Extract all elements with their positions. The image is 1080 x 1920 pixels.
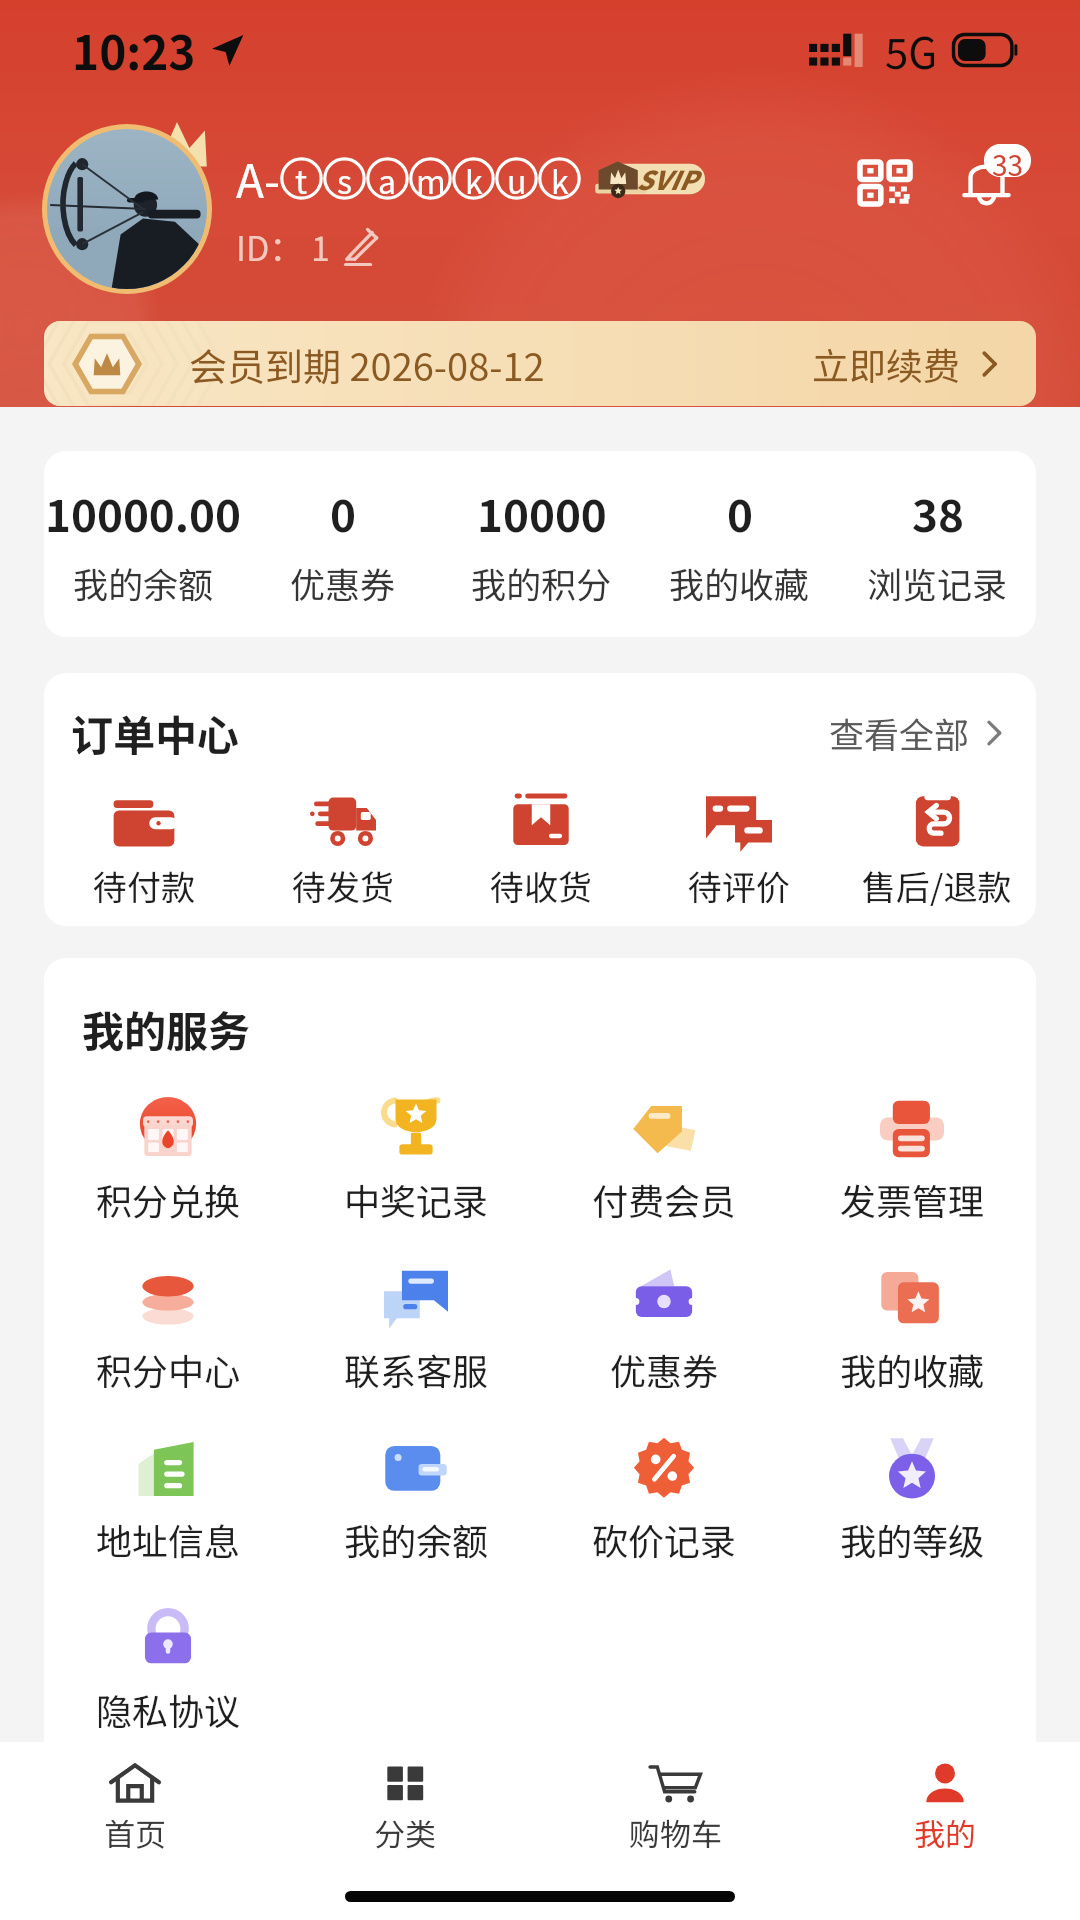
button[interactable]: 首页 xyxy=(0,1763,270,1855)
button[interactable]: 我的收藏 xyxy=(788,1267,1036,1395)
staticText: 查看全部 xyxy=(829,707,970,758)
button[interactable]: 售后/退款 xyxy=(838,787,1036,910)
staticText: 联系客服 xyxy=(344,1343,489,1395)
button[interactable]: 发票管理 xyxy=(788,1097,1036,1225)
staticText: A- xyxy=(236,145,280,212)
staticText: 订单中心 xyxy=(71,702,240,763)
staticText: 10000.00 xyxy=(45,481,242,545)
button[interactable]: 待收货 xyxy=(442,787,640,910)
staticText: ID： 1 xyxy=(236,222,330,271)
button[interactable]: 中奖记录 xyxy=(292,1097,540,1225)
staticText: m xyxy=(416,157,446,200)
staticText: 地址信息 xyxy=(96,1513,241,1565)
staticText: 隐私协议 xyxy=(96,1683,241,1735)
button[interactable]: Profile photo xyxy=(47,129,207,289)
staticText: 10:23 xyxy=(72,17,196,84)
staticText: 积分兑换 xyxy=(96,1173,241,1225)
staticText: 发票管理 xyxy=(840,1173,985,1225)
staticText: 5G xyxy=(885,20,938,81)
staticText: 砍价记录 xyxy=(592,1513,737,1565)
staticText: t xyxy=(295,157,308,200)
staticText: 10000 xyxy=(477,481,607,545)
staticText: SVIP xyxy=(636,160,697,198)
button[interactable]: Notifications xyxy=(963,137,1047,213)
staticText: k xyxy=(551,157,569,200)
staticText: a xyxy=(378,157,397,200)
button[interactable]: 待付款 xyxy=(44,787,243,910)
button[interactable]: 会员到期 2026-08-12 xyxy=(44,321,1036,406)
button[interactable]: 地址信息 xyxy=(44,1437,292,1565)
staticText: 我的余额 xyxy=(73,557,214,608)
staticText: 中奖记录 xyxy=(344,1173,489,1225)
staticText: 付费会员 xyxy=(592,1173,737,1225)
staticText: u xyxy=(507,157,527,200)
button[interactable]: 付费会员 xyxy=(540,1097,788,1225)
button[interactable]: 我的 xyxy=(810,1763,1080,1855)
staticText: 售后/退款 xyxy=(862,861,1012,910)
staticText: 38 xyxy=(912,481,964,545)
button[interactable]: 查看全部 xyxy=(829,707,1010,758)
staticText: 优惠券 xyxy=(290,557,396,608)
button[interactable]: 优惠券 xyxy=(540,1267,788,1395)
button[interactable]: 待评价 xyxy=(640,787,838,910)
staticText: 会员到期 2026-08-12 xyxy=(189,337,545,392)
button[interactable]: 待发货 xyxy=(243,787,442,910)
staticText: 我的收藏 xyxy=(840,1343,985,1395)
other: Edit nickname xyxy=(344,228,382,266)
staticText: 分类 xyxy=(374,1810,436,1855)
button[interactable]: 联系客服 xyxy=(292,1267,540,1395)
button[interactable]: 砍价记录 xyxy=(540,1437,788,1565)
staticText: 优惠券 xyxy=(610,1343,719,1395)
staticText: k xyxy=(465,157,483,200)
staticText: 首页 xyxy=(104,1810,166,1855)
staticText: 我的积分 xyxy=(471,557,612,608)
staticText: 待收货 xyxy=(490,861,592,910)
staticText: 我的 xyxy=(914,1810,976,1855)
staticText: 0 xyxy=(727,481,753,545)
button[interactable]: 我的等级 xyxy=(788,1437,1036,1565)
staticText: 0 xyxy=(330,481,356,545)
staticText: 待评价 xyxy=(688,861,790,910)
staticText: 我的服务 xyxy=(82,998,251,1059)
staticText: 积分中心 xyxy=(96,1343,241,1395)
button[interactable]: Scan QR code xyxy=(847,145,923,221)
button[interactable]: 积分中心 xyxy=(44,1267,292,1395)
button[interactable]: 购物车 xyxy=(540,1763,810,1855)
staticText: 待付款 xyxy=(93,861,195,910)
button[interactable]: 分类 xyxy=(270,1763,540,1855)
button[interactable]: 积分兑换 xyxy=(44,1097,292,1225)
staticText: s xyxy=(337,157,352,200)
staticText: 待发货 xyxy=(292,861,394,910)
staticText: 购物车 xyxy=(629,1810,722,1855)
staticText: 我的收藏 xyxy=(669,557,810,608)
staticText: 立即续费 xyxy=(812,337,960,391)
button[interactable]: 我的余额 xyxy=(292,1437,540,1565)
staticText: 33 xyxy=(992,144,1024,177)
button[interactable]: ID： 1 xyxy=(236,222,382,271)
staticText: 我的余额 xyxy=(344,1513,489,1565)
staticText: 我的等级 xyxy=(840,1513,985,1565)
staticText: 浏览记录 xyxy=(867,557,1008,608)
button[interactable]: 隐私协议 xyxy=(44,1607,292,1735)
